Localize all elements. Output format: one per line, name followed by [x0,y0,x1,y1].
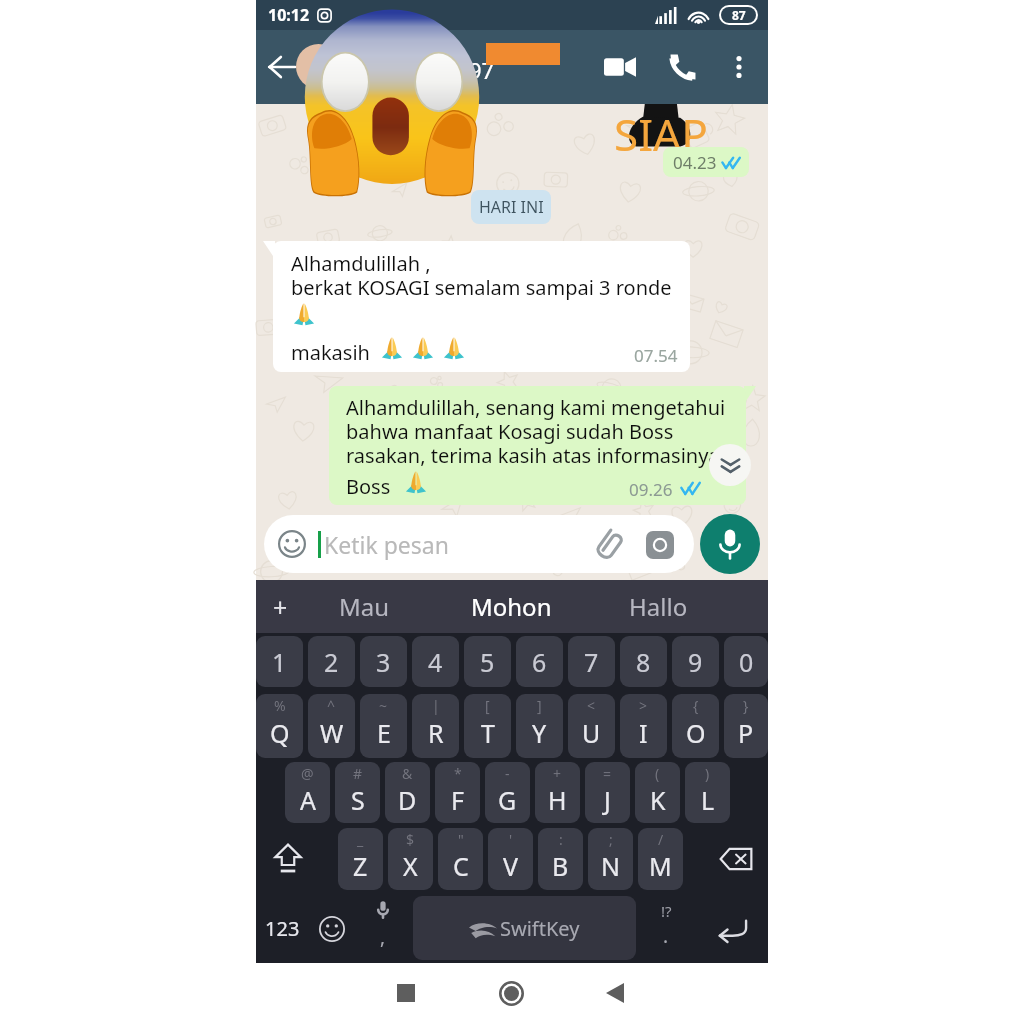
staticText: | [432,696,440,715]
button[interactable]: / [638,828,683,890]
button[interactable]: Emoji [308,895,356,962]
button[interactable]: More suggestions [256,580,304,633]
button[interactable]: 8 [620,636,667,687]
button[interactable]: Shift [256,828,320,890]
staticText: 4 [428,645,443,679]
staticText: ' [509,830,513,849]
staticText: Hallo [629,590,688,623]
staticText: HARI INI [479,196,544,218]
staticText: O [686,716,706,750]
staticText: # [353,764,363,783]
button[interactable]: Recent apps [373,960,439,1024]
button[interactable]: ) [685,762,730,823]
staticText: = [603,764,612,783]
button[interactable]: Mohon [431,580,591,633]
staticText: L [701,783,715,817]
button[interactable]: " [438,828,483,890]
button[interactable]: | [412,694,459,758]
button[interactable]: * [435,762,480,823]
button[interactable]: = [585,762,630,823]
staticText: 09.26 [629,478,673,501]
button[interactable]: Backspace [703,828,768,890]
button[interactable]: Back [582,960,648,1024]
staticText: N [601,849,621,883]
button[interactable]: 2 [308,636,355,687]
button[interactable]: Space [413,896,636,960]
staticText: T [481,716,495,750]
staticText: bahwa manfaat Kosagi sudah Boss [346,418,674,445]
button[interactable]: ^ [308,694,355,758]
staticText: < [587,696,596,715]
staticText: berkat KOSAGI semalam sampai 3 ronde [291,274,672,301]
button[interactable]: Hallo [598,580,718,633]
staticText: 87 [732,7,746,23]
staticText: 1 [272,645,287,679]
button[interactable]: - [485,762,530,823]
staticText: !? [661,901,672,921]
button[interactable]: < [568,694,615,758]
button[interactable]: & [385,762,430,823]
button[interactable]: _ [338,828,383,890]
button[interactable]: 3 [360,636,407,687]
staticText: 5 [480,645,495,679]
staticText: ) [705,764,710,783]
button[interactable]: 9 [672,636,719,687]
staticText: { [693,696,699,715]
button[interactable]: Scroll to bottom [709,444,751,486]
button[interactable]: @ [285,762,330,823]
button[interactable]: ] [516,694,563,758]
button[interactable]: Voice input [356,895,410,962]
button[interactable]: Enter [696,895,768,962]
staticText: 0 [739,645,754,679]
staticText: 97 [469,55,495,85]
button[interactable]: Record voice message [700,514,760,574]
staticText: X [403,849,418,883]
button[interactable]: ~ [360,694,407,758]
staticText: 6 [532,645,547,679]
staticText: W [320,716,344,750]
button[interactable]: 4 [412,636,459,687]
staticText: + [273,590,288,624]
staticText: } [743,696,749,715]
staticText: ( [655,764,660,783]
button[interactable]: More options [717,45,761,89]
button[interactable]: } [724,694,768,758]
staticText: Boss [346,473,391,500]
button[interactable]: 0 [724,636,768,687]
button[interactable]: Home [478,960,544,1024]
button[interactable]: % [256,694,303,758]
button[interactable]: Back [264,49,300,85]
staticText: I [639,716,648,750]
staticText: . [663,923,669,949]
staticText: M [649,849,672,883]
button[interactable]: $ [388,828,433,890]
staticText: SwiftKey [500,915,580,942]
button[interactable]: ( [635,762,680,823]
staticText: A [300,783,316,817]
button[interactable]: : [538,828,583,890]
button[interactable]: Punctuation [639,895,693,962]
button[interactable]: Mau [304,580,424,633]
button[interactable]: 1 [256,636,303,687]
staticText: D [398,783,417,817]
button[interactable]: 7 [568,636,615,687]
button[interactable]: Video call [598,45,642,89]
button[interactable]: { [672,694,719,758]
staticText: / [658,830,664,849]
button[interactable]: Ketik pesan [264,515,694,573]
staticText: 9 [688,645,703,679]
button[interactable]: Voice call [661,45,705,89]
staticText: - [505,764,510,783]
button[interactable]: 6 [516,636,563,687]
button[interactable]: ; [588,828,633,890]
staticText: ] [537,696,542,715]
staticText: Z [353,849,368,883]
button[interactable]: ' [488,828,533,890]
button[interactable]: # [335,762,380,823]
button[interactable]: [ [464,694,511,758]
button[interactable]: Numbers [256,895,308,962]
staticText: > [639,696,648,715]
button[interactable]: 5 [464,636,511,687]
button[interactable]: + [535,762,580,823]
button[interactable]: > [620,694,667,758]
